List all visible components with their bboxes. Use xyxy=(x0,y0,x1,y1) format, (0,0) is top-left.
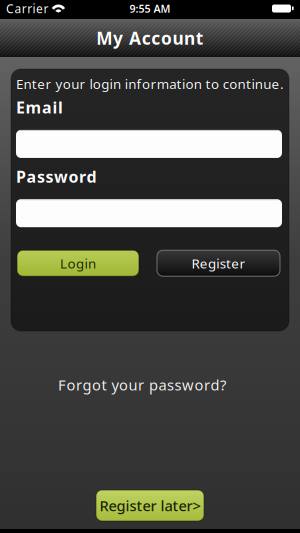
staticText: My Account xyxy=(96,26,204,49)
button[interactable]: Register xyxy=(157,250,280,276)
button[interactable]: Login xyxy=(17,250,139,276)
staticText: Password xyxy=(16,166,96,187)
staticText: Enter your login information to continue… xyxy=(16,75,284,93)
staticText: Register later> xyxy=(99,496,200,515)
staticText: Login xyxy=(60,254,96,272)
staticText: 9:55 AM xyxy=(129,1,170,16)
button[interactable] xyxy=(16,130,282,158)
staticText: Email xyxy=(16,97,63,118)
staticText: Forgot your password? xyxy=(58,375,226,394)
button[interactable]: Register later> xyxy=(96,490,204,521)
staticText: Register xyxy=(191,254,245,272)
button[interactable]: Forgot your password? xyxy=(58,375,226,394)
button[interactable] xyxy=(16,199,282,227)
staticText: Carrier xyxy=(6,0,48,16)
